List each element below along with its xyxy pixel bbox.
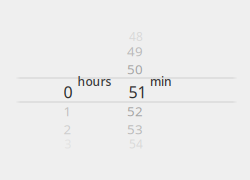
staticText: 48	[129, 28, 143, 44]
staticText: 50	[127, 60, 143, 78]
staticText: 2	[63, 120, 71, 138]
staticText: min	[150, 73, 172, 89]
staticText: 49	[127, 42, 143, 60]
staticText: 1	[63, 102, 71, 120]
button[interactable]: 51	[66, 81, 146, 103]
staticText: 53	[127, 120, 143, 138]
staticText: hours	[77, 73, 111, 89]
staticText: 0	[63, 81, 72, 103]
staticText: 51	[128, 81, 146, 103]
staticText: 3	[64, 136, 71, 152]
button[interactable]: 0	[0, 81, 72, 103]
staticText: 52	[127, 102, 143, 120]
staticText: 54	[129, 136, 143, 152]
